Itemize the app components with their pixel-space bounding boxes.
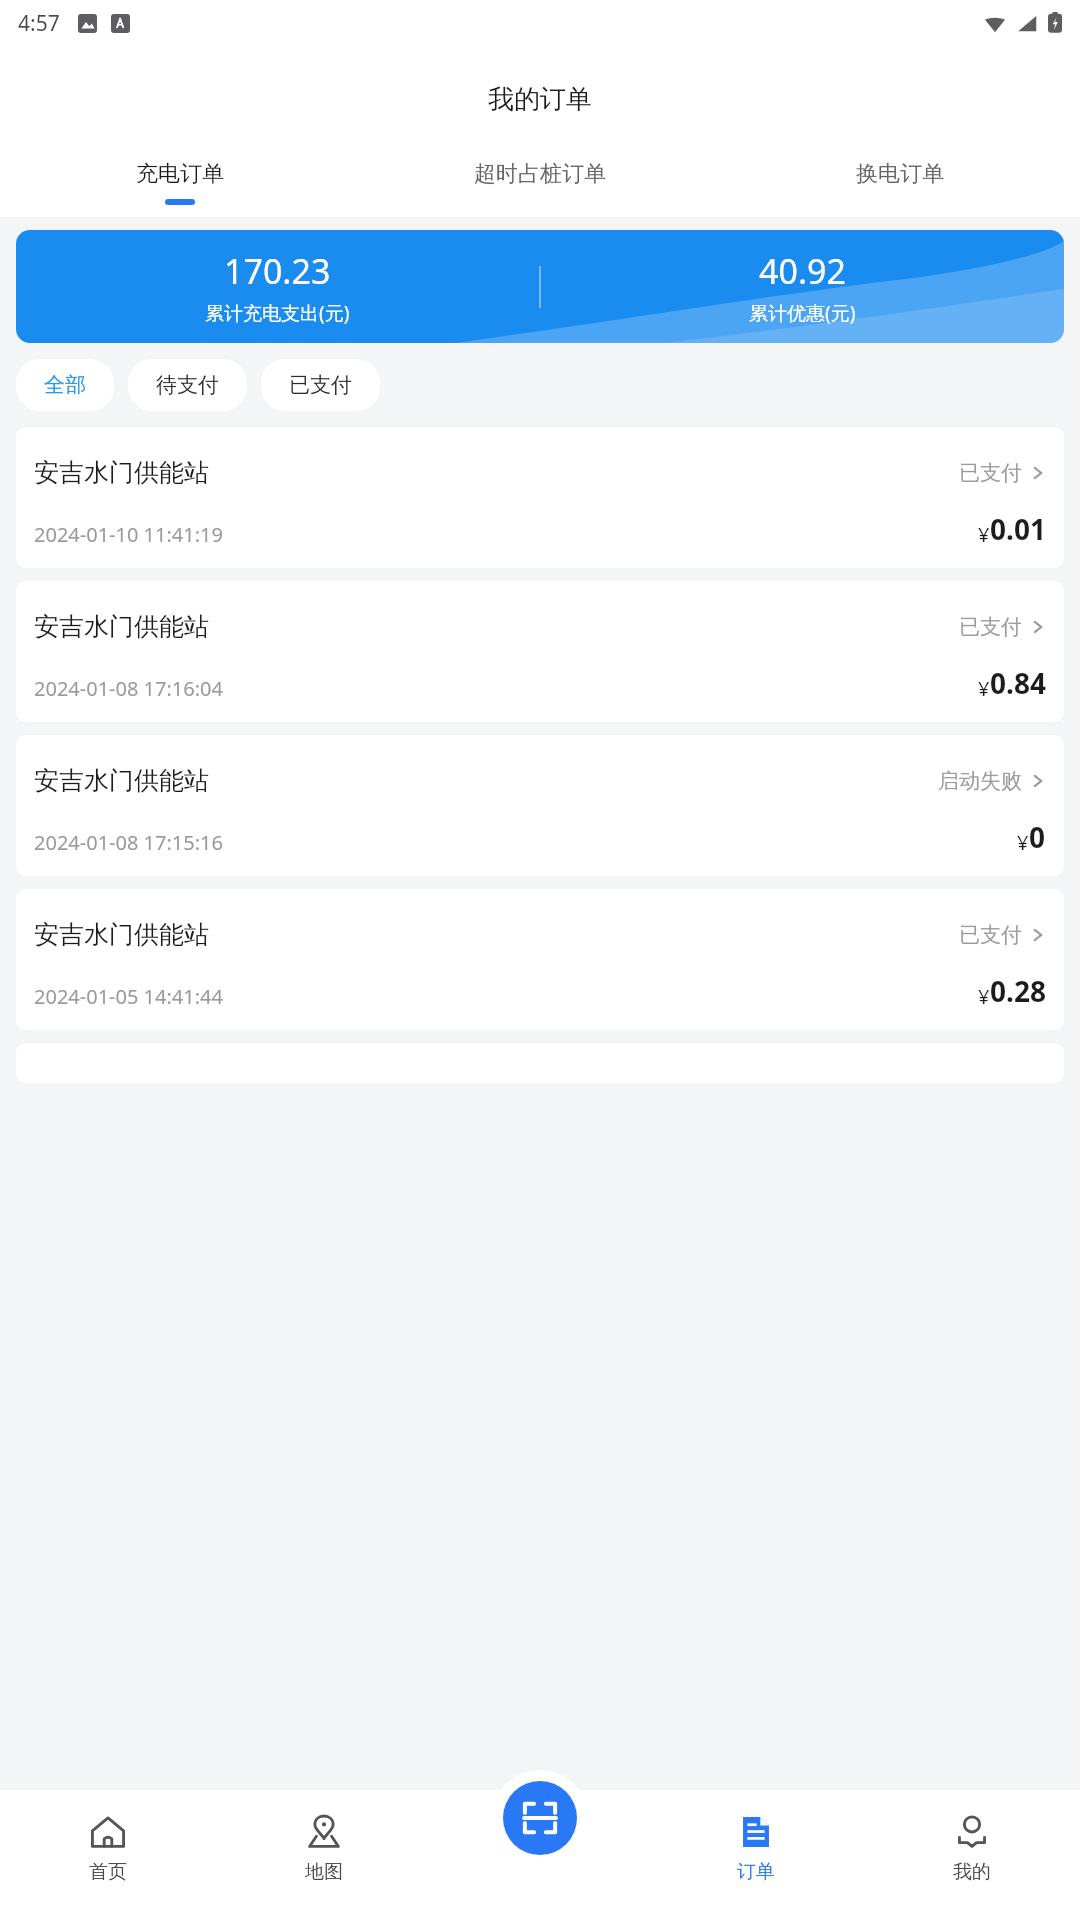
staticText: 安吉水门供能站 <box>34 611 209 642</box>
button[interactable]: 订单 <box>648 1812 864 1884</box>
button[interactable]: 全部 <box>16 359 114 411</box>
staticText: 订单 <box>737 1860 775 1884</box>
staticText: 2024-01-05 14:41:44 <box>34 983 223 1010</box>
button[interactable]: 换电订单 <box>720 160 1080 205</box>
button[interactable]: 170.23 <box>16 230 1064 343</box>
staticText: ¥ <box>1017 829 1029 856</box>
staticText: 0.84 <box>990 664 1046 702</box>
button[interactable]: 扫一扫 <box>503 1781 577 1855</box>
staticText: 0.28 <box>990 972 1046 1010</box>
staticText: ¥ <box>978 983 990 1010</box>
staticText: 0.01 <box>990 510 1046 548</box>
staticText: 我的 <box>953 1860 991 1884</box>
button[interactable]: 充电订单 <box>0 160 360 205</box>
staticText: 安吉水门供能站 <box>34 919 209 950</box>
staticText: ¥ <box>978 521 990 548</box>
staticText: 2024-01-08 17:15:16 <box>34 829 223 856</box>
button[interactable]: 安吉水门供能站 <box>16 581 1064 722</box>
staticText: 已支付 <box>959 614 1022 640</box>
staticText: 安吉水门供能站 <box>34 457 209 488</box>
button[interactable]: 我的 <box>864 1812 1080 1884</box>
button[interactable]: 地图 <box>216 1812 432 1884</box>
staticText: 我的订单 <box>488 83 592 116</box>
staticText: 170.23 <box>224 248 331 294</box>
button[interactable]: 首页 <box>0 1812 216 1884</box>
button[interactable]: 已支付 <box>261 359 380 411</box>
button[interactable]: 待支付 <box>128 359 247 411</box>
staticText: 充电订单 <box>136 160 224 188</box>
staticText: ¥ <box>978 675 990 702</box>
staticText: 全部 <box>44 372 86 398</box>
staticText: 待支付 <box>156 372 219 398</box>
staticText: 累计充电支出(元) <box>205 300 350 326</box>
staticText: 已支付 <box>959 922 1022 948</box>
staticText: 超时占桩订单 <box>474 160 606 188</box>
staticText: 40.92 <box>759 248 846 294</box>
staticText: 已支付 <box>289 372 352 398</box>
staticText: 安吉水门供能站 <box>34 765 209 796</box>
button[interactable]: 超时占桩订单 <box>360 160 720 205</box>
staticText: 0 <box>1029 818 1046 856</box>
staticText: 地图 <box>305 1860 343 1884</box>
staticText: 换电订单 <box>856 160 944 188</box>
staticText: 4:57 <box>18 9 60 38</box>
staticText: 2024-01-08 17:16:04 <box>34 675 223 702</box>
staticText: 累计优惠(元) <box>749 300 856 326</box>
staticText: 首页 <box>89 1860 127 1884</box>
staticText: 2024-01-10 11:41:19 <box>34 521 223 548</box>
staticText: 已支付 <box>959 460 1022 486</box>
staticText: 启动失败 <box>938 768 1022 794</box>
button[interactable]: 安吉水门供能站 <box>16 735 1064 876</box>
button[interactable]: 安吉水门供能站 <box>16 427 1064 568</box>
button[interactable]: 安吉水门供能站 <box>16 889 1064 1030</box>
